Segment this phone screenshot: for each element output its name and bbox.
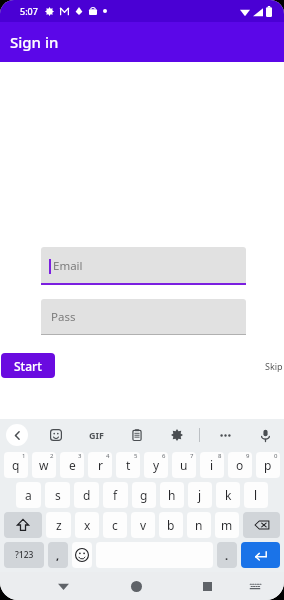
button[interactable]: ?123 — [4, 542, 44, 568]
staticText: k — [225, 487, 232, 503]
staticText: 9 — [246, 452, 250, 460]
staticText: g — [140, 487, 148, 503]
button[interactable]: Home — [124, 574, 148, 598]
button[interactable]: j — [188, 482, 212, 508]
staticText: 1 — [22, 452, 26, 460]
staticText: Sign in — [10, 32, 59, 52]
staticText: Start — [14, 358, 42, 374]
staticText: Pass — [51, 309, 76, 325]
staticText: 5:07 — [20, 5, 38, 17]
button[interactable]: Stickers — [45, 424, 67, 446]
staticText: 4 — [106, 452, 110, 460]
staticText: x — [84, 517, 91, 533]
staticText: z — [56, 517, 62, 533]
staticText: , — [56, 548, 60, 563]
button[interactable]: u — [172, 452, 196, 478]
button[interactable]: v — [131, 512, 155, 538]
staticText: 8 — [218, 452, 222, 460]
button[interactable]: a — [16, 482, 41, 508]
staticText: ?123 — [15, 549, 34, 561]
button[interactable]: f — [103, 482, 128, 508]
button[interactable]: Shift — [4, 512, 42, 538]
staticText: t — [126, 457, 131, 473]
staticText: 5 — [134, 452, 138, 460]
button[interactable]: l — [244, 482, 268, 508]
staticText: o — [236, 457, 244, 473]
staticText: 7 — [190, 452, 194, 460]
button[interactable]: , — [48, 542, 68, 568]
staticText: r — [98, 457, 103, 473]
staticText: c — [112, 517, 118, 533]
staticText: u — [180, 457, 188, 473]
button[interactable]: . — [217, 542, 237, 568]
staticText: h — [168, 487, 176, 503]
button[interactable]: Emoji — [72, 542, 92, 568]
button[interactable]: i — [200, 452, 224, 478]
button[interactable]: More options — [214, 424, 236, 446]
button[interactable]: Back — [6, 424, 28, 446]
staticText: q — [12, 457, 20, 473]
staticText: 6 — [162, 452, 166, 460]
staticText: j — [198, 487, 202, 503]
button[interactable]: o — [228, 452, 252, 478]
button[interactable]: s — [45, 482, 70, 508]
staticText: s — [55, 487, 61, 503]
button[interactable]: Back — [51, 574, 75, 598]
staticText: . — [225, 548, 229, 563]
staticText: v — [140, 517, 147, 533]
staticText: d — [83, 487, 91, 503]
button[interactable]: Voice input — [254, 424, 276, 446]
button[interactable]: c — [103, 512, 127, 538]
button[interactable]: Email — [41, 247, 246, 285]
staticText: a — [25, 487, 32, 503]
button[interactable]: k — [216, 482, 240, 508]
staticText: 2 — [50, 452, 54, 460]
staticText: e — [69, 457, 76, 473]
button[interactable]: e — [60, 452, 84, 478]
button[interactable]: n — [187, 512, 211, 538]
button[interactable]: Start — [1, 353, 55, 378]
button[interactable]: q — [4, 452, 28, 478]
staticText: p — [264, 457, 272, 473]
button[interactable]: d — [74, 482, 99, 508]
staticText: l — [254, 487, 258, 503]
button[interactable]: g — [132, 482, 156, 508]
button[interactable]: Recents — [195, 574, 219, 598]
staticText: 3 — [78, 452, 82, 460]
button[interactable]: Settings — [166, 424, 188, 446]
staticText: GIF — [89, 429, 104, 441]
button[interactable]: Backspace — [243, 512, 280, 538]
staticText: Email — [53, 258, 83, 274]
staticText: 0 — [274, 452, 278, 460]
button[interactable]: x — [75, 512, 99, 538]
staticText: m — [221, 517, 233, 533]
button[interactable]: r — [88, 452, 112, 478]
button[interactable]: t — [116, 452, 140, 478]
staticText: n — [195, 517, 203, 533]
button[interactable]: h — [160, 482, 184, 508]
staticText: i — [210, 457, 214, 473]
button[interactable]: p — [256, 452, 280, 478]
staticText: y — [153, 457, 160, 473]
button[interactable]: Pass — [41, 299, 246, 335]
button[interactable]: Skip — [265, 360, 284, 372]
button[interactable]: Clipboard — [126, 424, 148, 446]
staticText: f — [113, 487, 118, 503]
staticText: b — [167, 517, 175, 533]
button[interactable]: z — [46, 512, 71, 538]
staticText: w — [39, 457, 49, 473]
button[interactable]: m — [215, 512, 239, 538]
staticText: Skip — [265, 360, 283, 372]
button[interactable]: GIF — [84, 423, 108, 447]
button[interactable]: Hide keyboard — [243, 574, 267, 598]
button[interactable]: Enter — [241, 542, 280, 568]
button[interactable]: y — [144, 452, 168, 478]
button[interactable]: b — [159, 512, 183, 538]
button[interactable]: w — [32, 452, 56, 478]
